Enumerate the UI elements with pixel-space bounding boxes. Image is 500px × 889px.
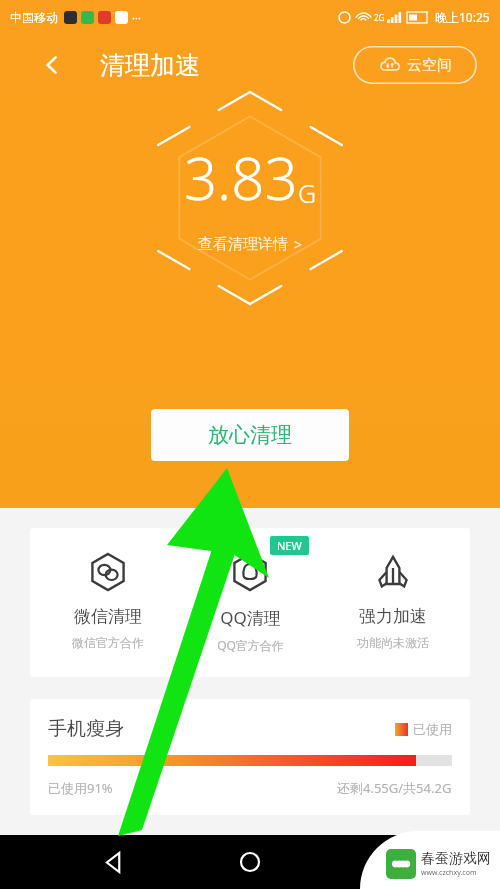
button[interactable]: 强力加速 — [328, 550, 458, 652]
staticText: G — [298, 176, 317, 210]
staticText: 2G — [374, 12, 385, 23]
staticText: 云空间 — [407, 56, 452, 75]
staticText: 3.83 — [184, 138, 298, 217]
staticText: > — [294, 235, 303, 254]
button[interactable]: Home — [227, 839, 273, 885]
staticText: 查看清理详情 — [198, 235, 288, 254]
staticText: 中国移动 — [10, 10, 58, 25]
staticText: 手机瘦身 — [48, 717, 124, 741]
staticText: www.czchxy.com — [421, 868, 477, 878]
staticText: 晚上10:25 — [435, 9, 490, 25]
staticText: 放心清理 — [208, 422, 292, 448]
button[interactable]: 查看清理详情 — [194, 231, 307, 258]
button[interactable]: 微信清理 — [43, 550, 173, 652]
staticText: 春蚕游戏网 — [421, 850, 491, 868]
staticText: 微信官方合作 — [72, 635, 144, 650]
staticText: QQ官方合作 — [217, 637, 284, 653]
staticText: 已使用 — [413, 721, 452, 737]
staticText: 清理加速 — [100, 50, 200, 81]
button[interactable]: Back — [32, 45, 72, 85]
staticText: ··· — [132, 10, 141, 25]
button[interactable]: 放心清理 — [151, 409, 349, 461]
staticText: QQ清理 — [220, 606, 281, 629]
button[interactable]: Back — [91, 839, 137, 885]
button[interactable]: QQ清理 — [185, 550, 315, 655]
button[interactable]: Recents — [364, 839, 410, 885]
staticText: 功能尚未激活 — [357, 635, 429, 650]
button[interactable]: 云空间 — [352, 46, 478, 84]
staticText: 已使用91% — [48, 779, 113, 797]
staticText: 强力加速 — [359, 606, 427, 627]
staticText: NEW — [277, 538, 302, 553]
staticText: 微信清理 — [74, 606, 142, 627]
button[interactable]: 手机瘦身 — [30, 699, 470, 815]
staticText: 还剩4.55G/共54.2G — [337, 779, 452, 797]
